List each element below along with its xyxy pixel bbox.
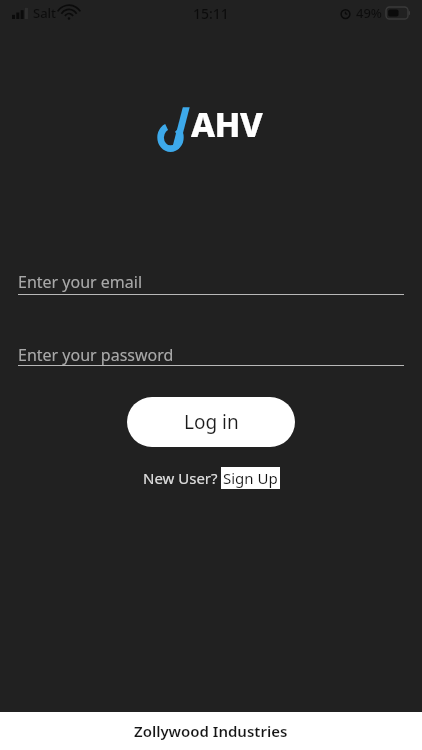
button[interactable]: Log in	[127, 397, 295, 447]
button[interactable]: Enter your password	[18, 344, 422, 366]
staticText: Salt	[33, 4, 57, 22]
staticText: Zollywood Industries	[134, 721, 288, 741]
staticText: New User?	[143, 468, 218, 488]
staticText: 49%	[356, 4, 382, 22]
staticText: AHV	[191, 101, 263, 147]
other: dAHV logo	[160, 105, 190, 150]
staticText: Log in	[184, 409, 239, 435]
button[interactable]: Sign Up	[221, 467, 280, 489]
button[interactable]: Enter your email	[18, 271, 422, 293]
staticText: Sign Up	[223, 468, 278, 488]
staticText: 15:11	[193, 4, 229, 23]
